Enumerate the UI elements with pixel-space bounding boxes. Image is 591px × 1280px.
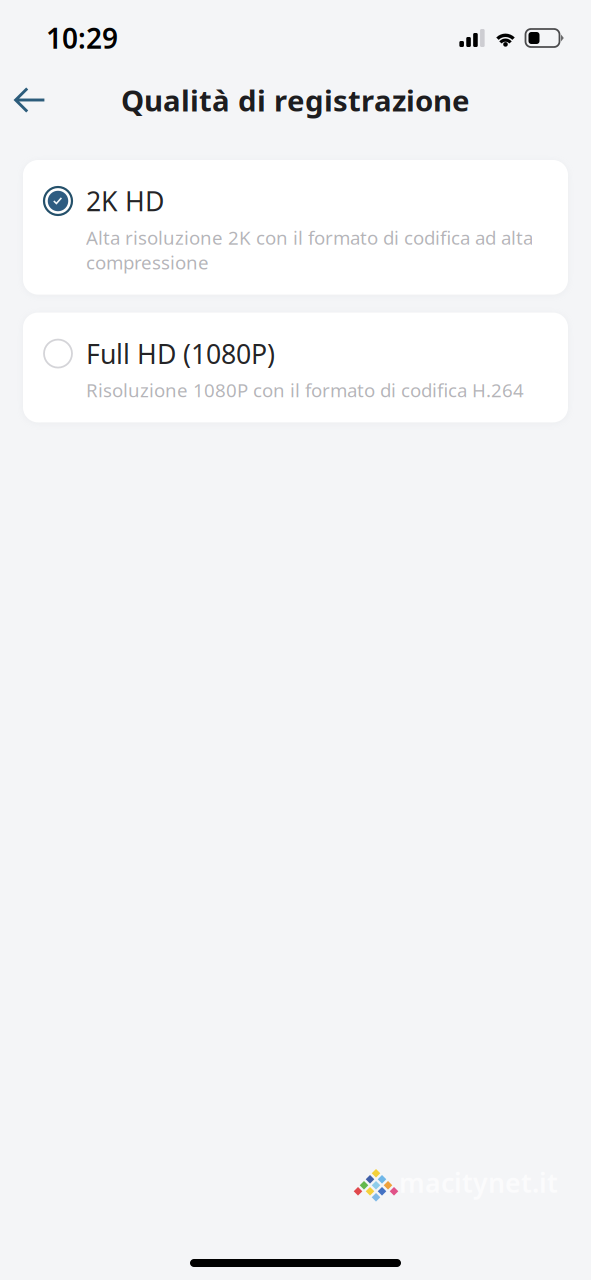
staticText: Full HD (1080P) — [86, 336, 275, 371]
staticText: Alta risoluzione 2K con il formato di co… — [86, 225, 533, 275]
button[interactable]: Back — [0, 72, 60, 127]
staticText: 10:29 — [46, 19, 118, 57]
button[interactable]: Full HD (1080P) — [23, 313, 568, 422]
staticText: Qualità di registrazione — [121, 80, 470, 119]
staticText: 2K HD — [86, 183, 164, 219]
staticText: Risoluzione 1080P con il formato di codi… — [86, 378, 524, 402]
button[interactable]: 2K HD — [23, 160, 568, 295]
